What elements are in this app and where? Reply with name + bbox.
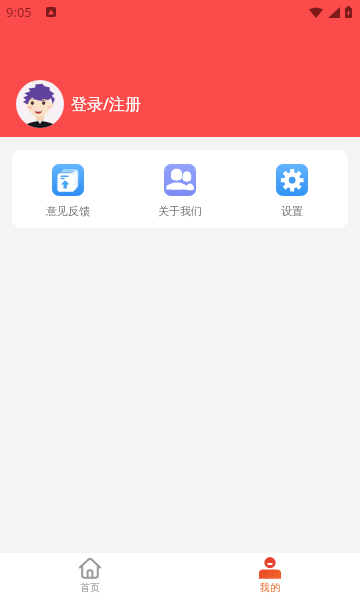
staticText: 首页 [80,581,100,594]
button[interactable]: 首页 [0,553,180,600]
staticText: 登录/注册 [71,93,141,115]
button[interactable]: 意见反馈 [12,150,124,228]
staticText: 我的 [260,581,280,594]
button[interactable]: 设置 [236,150,348,228]
staticText: 意见反馈 [46,204,90,218]
staticText: 设置 [281,204,303,218]
staticText: 关于我们 [158,204,202,218]
button[interactable]: 关于我们 [124,150,236,228]
button[interactable]: 登录/注册 [16,80,360,128]
staticText: 9:05 [6,3,32,21]
button[interactable]: 我的 [180,553,360,600]
